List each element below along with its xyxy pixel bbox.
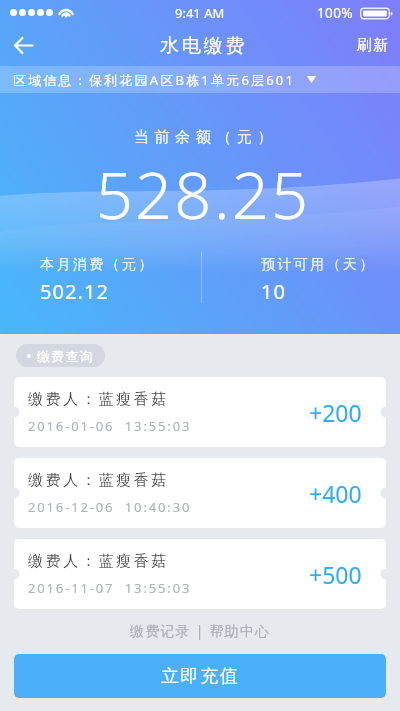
button[interactable]: 缴费人：蓝瘦香菇 <box>14 458 386 528</box>
staticText: 当前余额（元） <box>6 128 400 147</box>
button[interactable]: 区域信息：保利花园A区B栋1单元6层601 <box>0 66 400 93</box>
staticText: 预计可用（天） <box>261 256 376 274</box>
staticText: 2016-12-06 10:40:30 <box>28 498 192 516</box>
staticText: 立即充值 <box>161 665 240 688</box>
staticText: 缴费人：蓝瘦香菇 <box>28 471 169 490</box>
staticText: +200 <box>309 397 362 428</box>
button[interactable]: 缴费记录 | 帮助中心 <box>126 618 275 643</box>
staticText: 528.25 <box>3 150 400 239</box>
button[interactable]: 刷新 <box>343 28 400 63</box>
button[interactable]: Back <box>0 25 46 66</box>
staticText: 本月消费（元） <box>40 256 155 274</box>
staticText: 9:41 AM <box>175 4 225 22</box>
button[interactable]: 缴费查询 <box>16 344 105 367</box>
staticText: 502.12 <box>40 278 110 305</box>
button[interactable]: 缴费人：蓝瘦香菇 <box>14 377 386 447</box>
staticText: 区域信息：保利花园A区B栋1单元6层601 <box>13 71 296 89</box>
staticText: 水电缴费 <box>160 34 248 58</box>
staticText: +500 <box>309 559 362 590</box>
staticText: 缴费人：蓝瘦香菇 <box>28 390 169 409</box>
staticText: +400 <box>309 478 362 509</box>
staticText: 2016-11-07 13:55:03 <box>28 579 192 597</box>
staticText: 缴费人：蓝瘦香菇 <box>28 552 169 571</box>
staticText: 2016-01-06 13:55:03 <box>28 417 192 435</box>
staticText: 缴费查询 <box>37 348 94 364</box>
staticText: 100% <box>317 4 353 22</box>
button[interactable]: 缴费人：蓝瘦香菇 <box>14 539 386 609</box>
button[interactable]: 立即充值 <box>14 654 386 698</box>
staticText: 10 <box>261 278 287 305</box>
staticText: 缴费记录 | 帮助中心 <box>130 621 271 640</box>
staticText: 刷新 <box>356 36 389 55</box>
